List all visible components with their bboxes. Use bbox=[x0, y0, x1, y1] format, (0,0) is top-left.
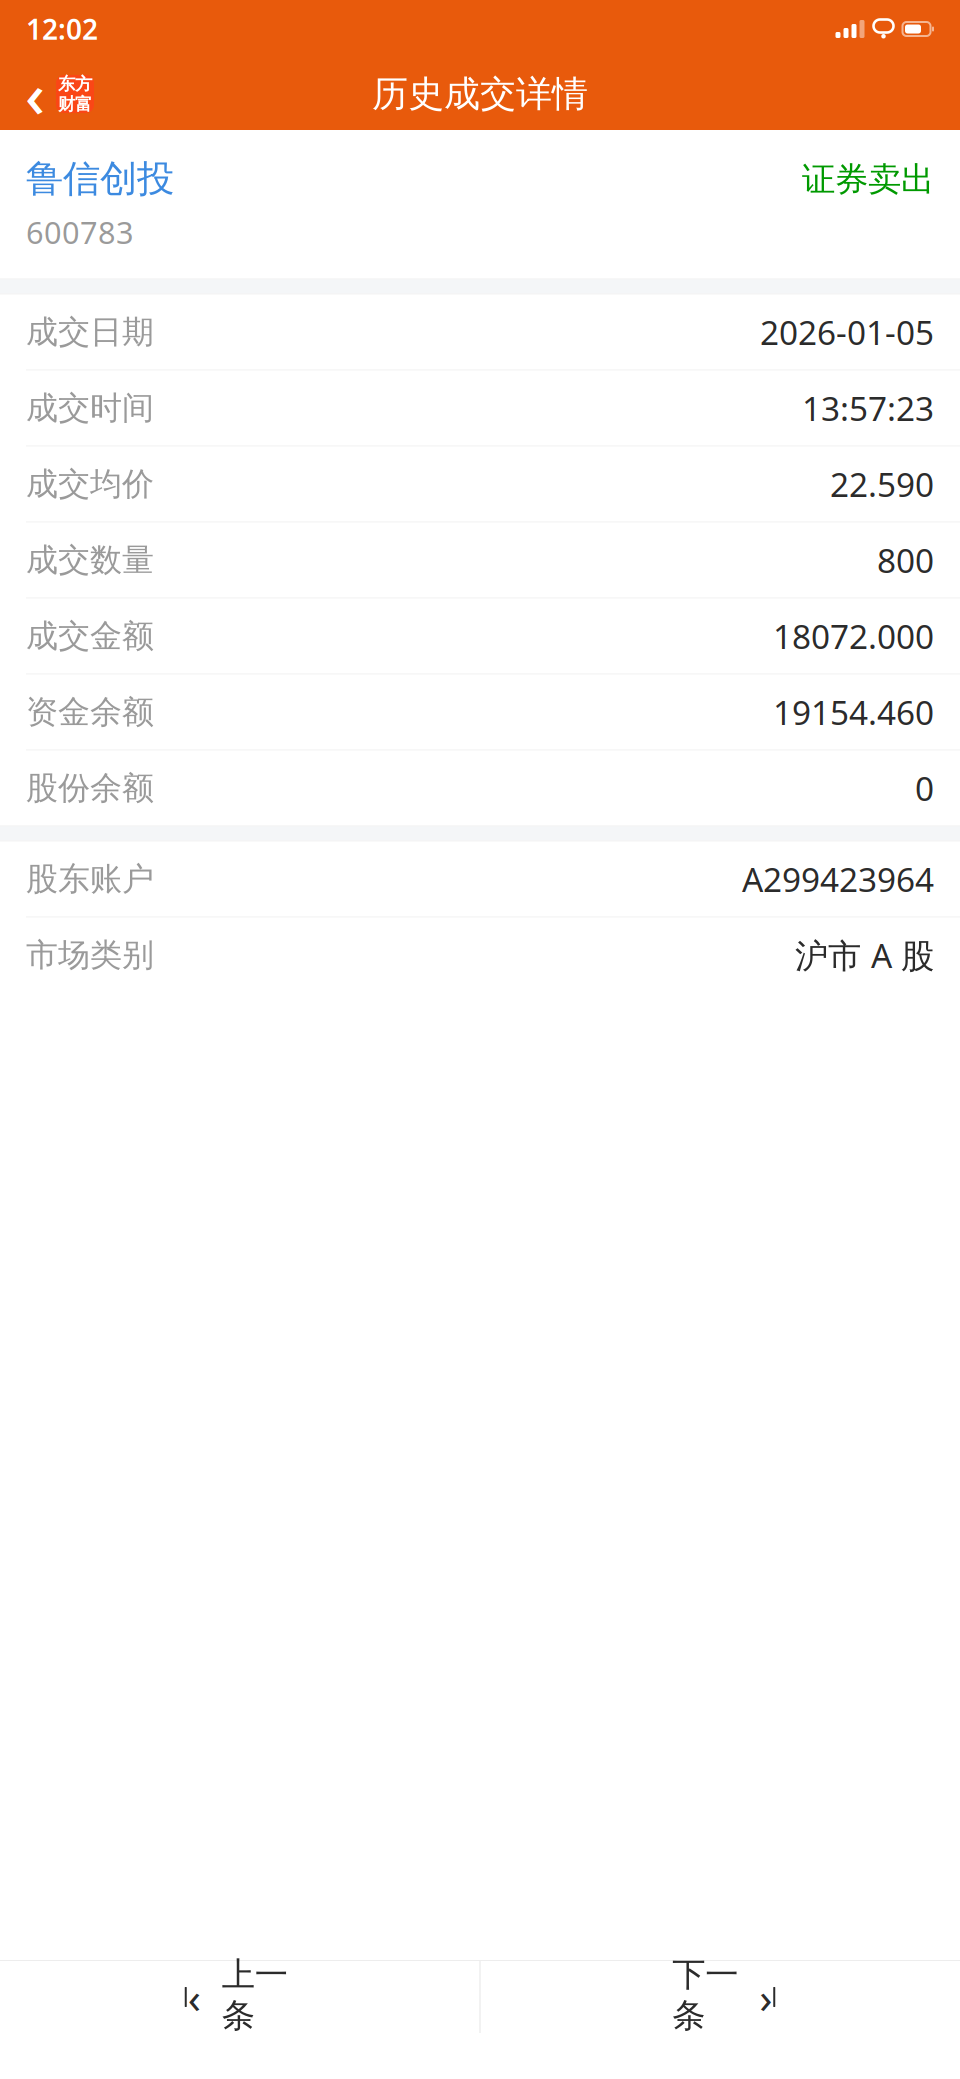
staticText: 0 bbox=[915, 766, 934, 810]
staticText: 成交日期 bbox=[26, 312, 154, 352]
staticText: 东方 bbox=[58, 73, 92, 94]
staticText: 12:02 bbox=[26, 10, 98, 48]
staticText: 成交数量 bbox=[26, 540, 154, 580]
staticText: 2026-01-05 bbox=[760, 310, 934, 354]
staticText: 成交均价 bbox=[26, 464, 154, 504]
staticText: 成交金额 bbox=[26, 616, 154, 656]
staticText: › bbox=[759, 1969, 772, 2025]
staticText: 股份余额 bbox=[26, 768, 154, 808]
staticText: 沪市 A 股 bbox=[795, 933, 934, 977]
staticText: 下一条 bbox=[672, 1954, 738, 2036]
button[interactable]: ‹ bbox=[0, 1961, 479, 2033]
staticText: ‹ bbox=[188, 1969, 201, 2025]
button[interactable]: Back bbox=[0, 68, 94, 120]
staticText: 600783 bbox=[26, 212, 134, 253]
staticText: 资金余额 bbox=[26, 692, 154, 732]
staticText: 13:57:23 bbox=[802, 386, 934, 430]
staticText: ‹ bbox=[25, 53, 45, 135]
staticText: 财富 bbox=[58, 93, 92, 115]
staticText: 鲁信创投 bbox=[26, 156, 174, 202]
staticText: 上一条 bbox=[222, 1954, 288, 2036]
staticText: 证券卖出 bbox=[802, 159, 934, 200]
staticText: 市场类别 bbox=[26, 935, 154, 975]
staticText: A299423964 bbox=[742, 857, 934, 901]
staticText: 22.590 bbox=[830, 462, 934, 506]
staticText: 19154.460 bbox=[773, 690, 934, 734]
staticText: 800 bbox=[877, 538, 934, 582]
staticText: 股东账户 bbox=[26, 859, 154, 899]
staticText: 18072.000 bbox=[773, 614, 934, 658]
staticText: 成交时间 bbox=[26, 388, 154, 428]
button[interactable]: 下一条 bbox=[480, 1961, 960, 2033]
staticText: 历史成交详情 bbox=[372, 72, 588, 116]
